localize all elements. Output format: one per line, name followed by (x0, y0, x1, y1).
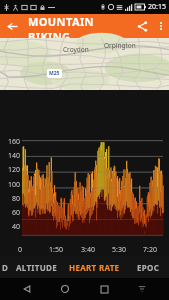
staticText: 1:50 (49, 245, 71, 255)
staticText: 60 (11, 208, 20, 218)
button[interactable]: More options (153, 18, 169, 34)
staticText: HEART RATE (69, 262, 120, 273)
button[interactable]: Recent apps (93, 278, 115, 300)
button[interactable]: Hide navigation bar (131, 278, 153, 300)
staticText: ALTITUDE (16, 262, 57, 273)
button[interactable]: EPOC (127, 256, 169, 278)
staticText: 100 (7, 180, 20, 190)
staticText: 20:15 (148, 2, 166, 12)
staticText: M25 (49, 70, 60, 77)
staticText: EPOC (137, 262, 160, 273)
staticText: 160 (7, 137, 20, 147)
staticText: 40 (11, 222, 20, 232)
staticText: Croydon (63, 45, 89, 54)
button[interactable]: Home (54, 278, 76, 300)
staticText: 0 (18, 245, 40, 255)
button[interactable]: ALTITUDE (10, 256, 62, 278)
staticText: Orpington (104, 41, 136, 50)
staticText: 120 (7, 165, 20, 175)
staticText: 140 (7, 151, 20, 161)
button[interactable]: Share (131, 15, 153, 37)
staticText: D (2, 262, 9, 273)
staticText: 3:40 (81, 245, 103, 255)
staticText: 80 (11, 194, 20, 204)
button[interactable]: HEART RATE (62, 256, 127, 278)
staticText: MOUNTAIN BIKING (28, 14, 131, 38)
staticText: 7:20 (143, 245, 165, 255)
staticText: 5:30 (112, 245, 134, 255)
button[interactable]: Back (0, 14, 24, 38)
button[interactable]: D (0, 256, 10, 278)
button[interactable]: Back (16, 278, 38, 300)
